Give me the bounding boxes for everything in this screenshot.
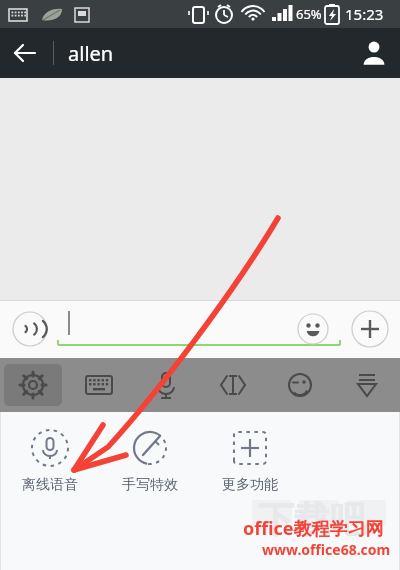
button[interactable]: Voice input xyxy=(8,307,52,351)
button[interactable]: Settings xyxy=(0,358,66,412)
button[interactable]: Hide keyboard xyxy=(333,358,400,412)
button[interactable]: Text style xyxy=(199,358,266,412)
button[interactable]: More options xyxy=(348,307,392,351)
button[interactable]: Voice xyxy=(132,358,199,412)
staticText: 手写特效 xyxy=(122,476,178,494)
button[interactable]: 更多功能 xyxy=(200,412,300,507)
staticText: 65% xyxy=(296,5,322,23)
button[interactable] xyxy=(58,307,293,347)
button[interactable]: Keyboard xyxy=(66,358,132,412)
button[interactable]: Contact profile xyxy=(348,28,400,78)
button[interactable]: Emoji xyxy=(294,310,332,348)
button[interactable]: 离线语音 xyxy=(0,412,100,507)
staticText: office教程学习网 xyxy=(243,516,384,541)
staticText: allen xyxy=(68,40,114,67)
staticText: www.office68.com xyxy=(262,540,391,559)
staticText: 离线语音 xyxy=(22,476,78,494)
button[interactable]: Emoticons xyxy=(266,358,333,412)
staticText: 下载吧 xyxy=(258,497,366,542)
staticText: 更多功能 xyxy=(222,476,278,494)
staticText: 15:23 xyxy=(345,4,384,24)
button[interactable]: Back xyxy=(0,29,48,77)
button[interactable]: 手写特效 xyxy=(100,412,200,507)
